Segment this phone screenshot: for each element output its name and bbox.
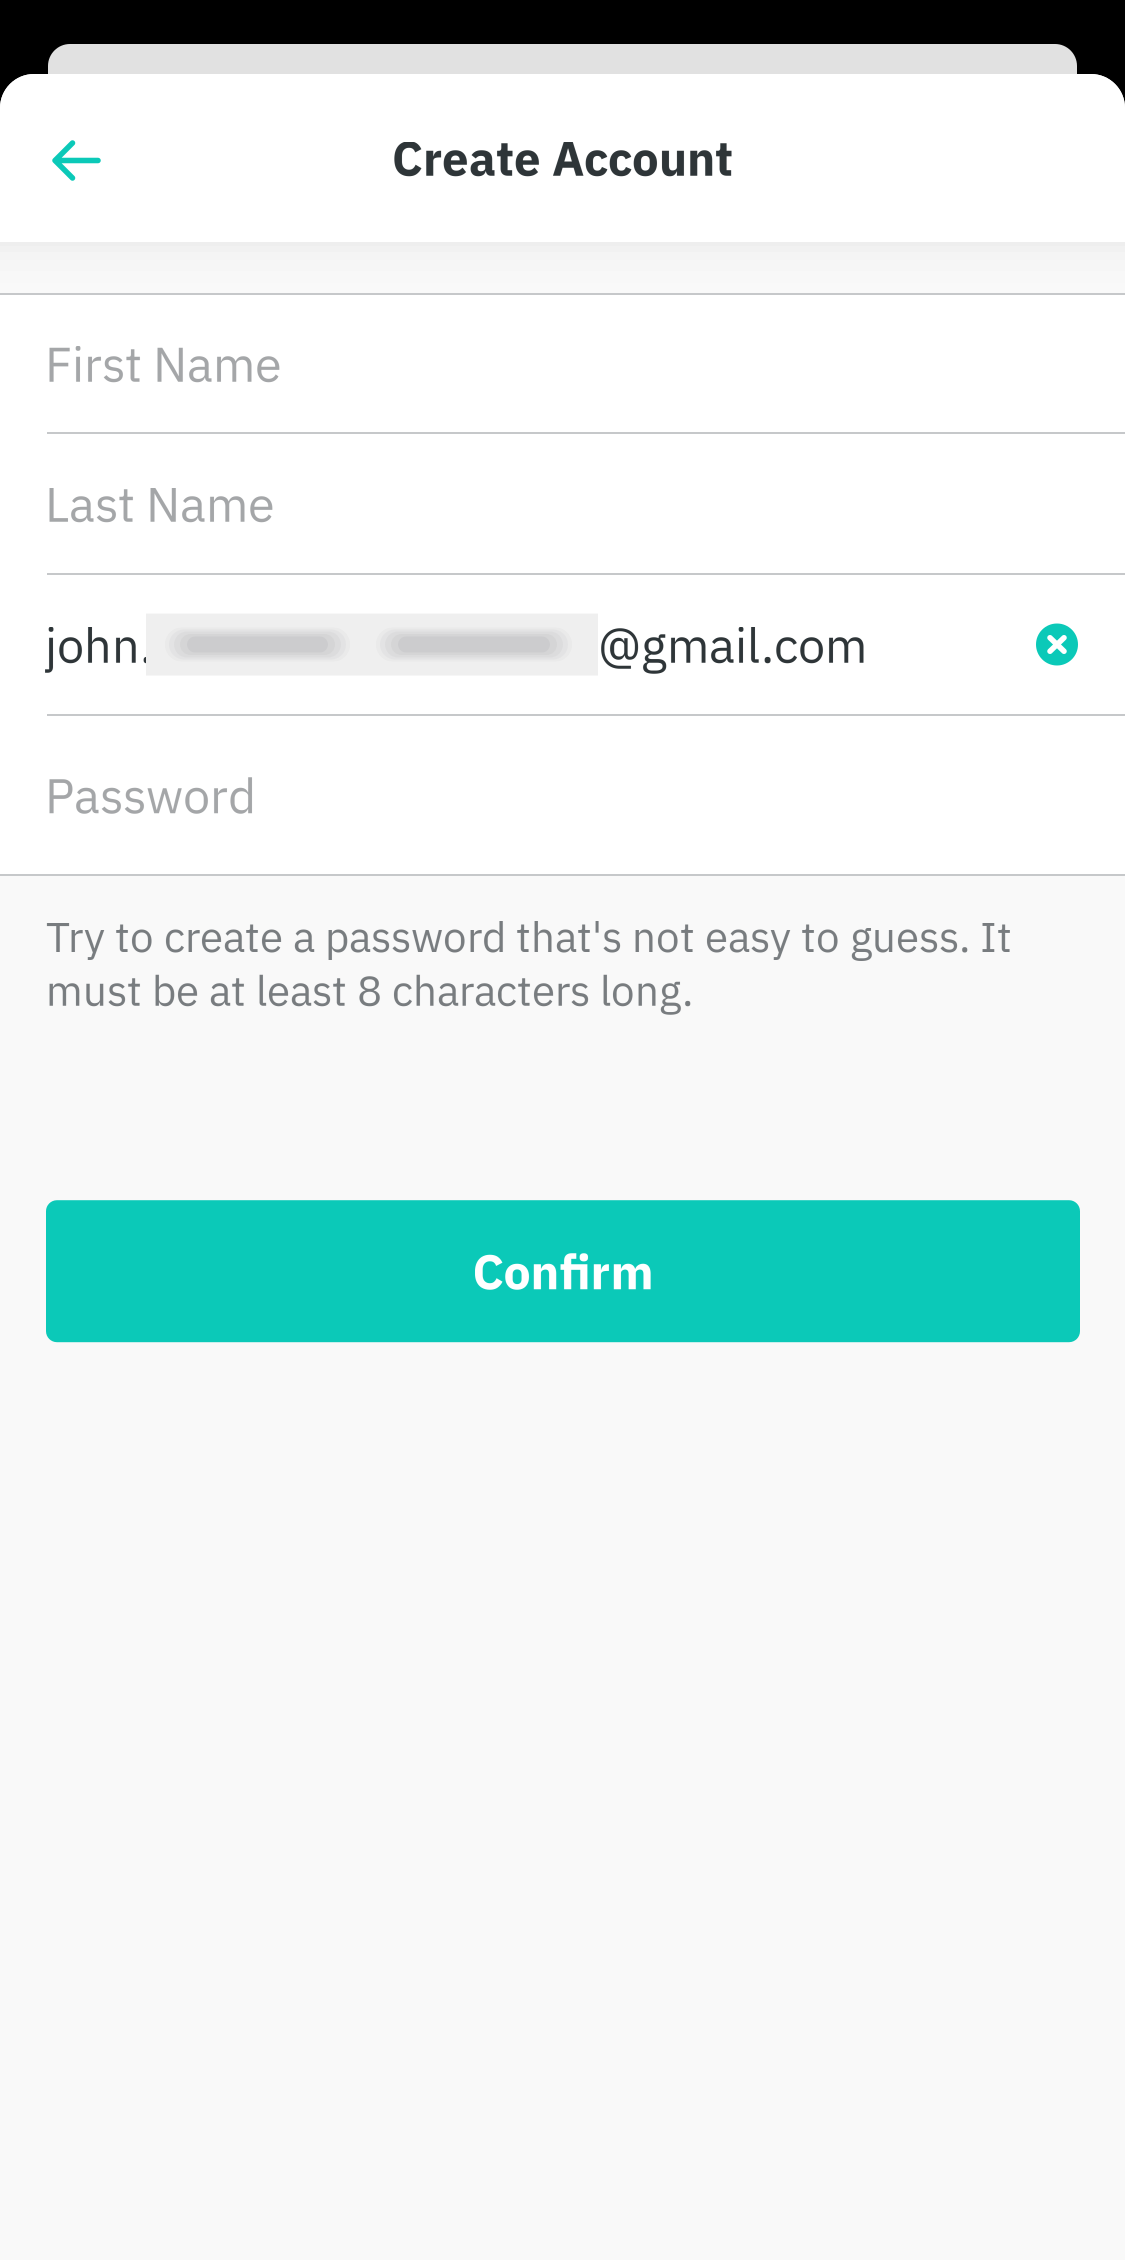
staticText: Password [45,763,256,827]
staticText: Try to create a password that's not easy… [46,909,1012,964]
button[interactable]: Back [0,87,128,229]
button[interactable]: Last Name [0,434,1125,573]
staticText: Last Name [45,472,275,535]
staticText: First Name [45,332,282,395]
button[interactable]: Confirm [46,1200,1080,1342]
button[interactable]: First Name [0,295,1125,432]
staticText: @gmail.com [598,613,867,676]
button[interactable]: Password [0,716,1125,874]
button[interactable]: Clear text [1009,596,1125,692]
button[interactable]: john. [0,575,1125,714]
staticText: Create Account [392,127,733,189]
staticText: must be at least 8 characters long. [46,963,693,1017]
staticText: john. [45,613,153,676]
staticText: Confirm [472,1240,653,1302]
